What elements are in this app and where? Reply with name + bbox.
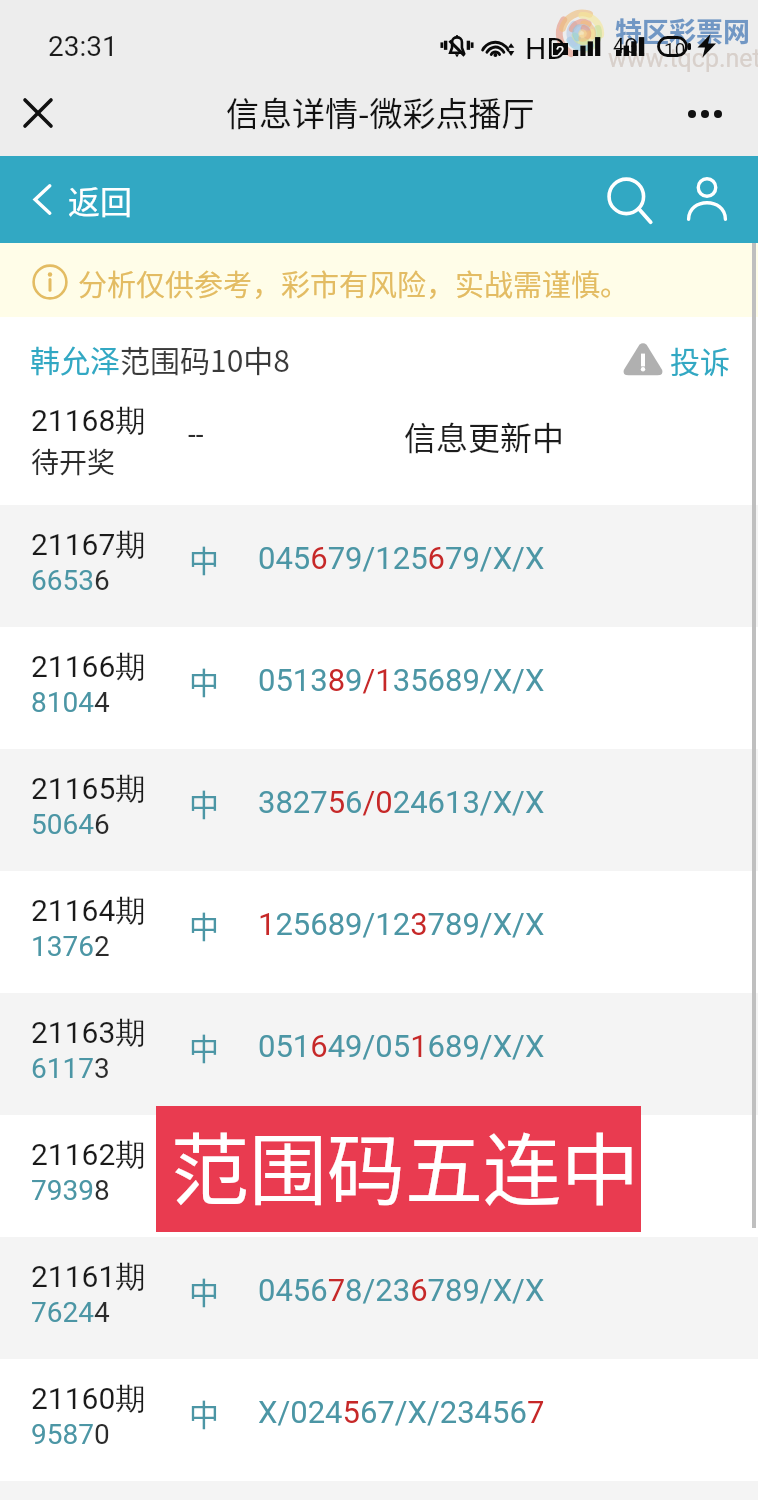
staticText: 76244 [31, 1296, 110, 1329]
staticText: 61173 [31, 1052, 110, 1085]
button[interactable]: 21164期 [0, 871, 758, 993]
button[interactable]: 21166期 [0, 627, 758, 749]
staticText: 95870 [31, 1418, 110, 1451]
staticText: 返回 [68, 177, 133, 223]
staticText: 045678/236789/X/X [258, 1272, 545, 1308]
button[interactable]: Search [601, 172, 659, 230]
button[interactable]: 21168期 [0, 396, 758, 505]
staticText: 4G [613, 34, 638, 57]
staticText: 21161期 [31, 1258, 146, 1296]
staticText: 81044 [31, 686, 110, 719]
staticText: 中 [189, 903, 219, 946]
staticText: 21167期 [31, 526, 146, 564]
staticText: 125689/123789/X/X [258, 906, 545, 942]
staticText: www.tqcp.net [608, 44, 758, 73]
button[interactable]: 21167期 [0, 505, 758, 627]
staticText: -- [188, 418, 204, 451]
staticText: 23:31 [48, 30, 118, 63]
staticText: 79398 [31, 1174, 110, 1207]
button[interactable]: 21165期 [0, 749, 758, 871]
staticText: 中 [189, 659, 219, 702]
staticText: 21163期 [31, 1014, 146, 1052]
staticText: 21162期 [31, 1136, 146, 1174]
staticText: 051649/051689/X/X [258, 1028, 545, 1064]
staticText: 21160期 [31, 1380, 146, 1418]
button[interactable]: 范围码五连中 [156, 1106, 641, 1232]
button[interactable]: 21161期 [0, 1237, 758, 1359]
staticText: 特区彩票网 [615, 11, 750, 50]
button[interactable]: 21160期 [0, 1359, 758, 1481]
button[interactable]: 投诉 [623, 334, 735, 384]
staticText: 中 [189, 1147, 219, 1190]
staticText: 韩允泽范围码10中8 [30, 337, 290, 380]
staticText: 10 [664, 38, 686, 60]
staticText: 21164期 [31, 892, 146, 930]
staticText: 045679/125679/X/X [258, 540, 545, 576]
staticText: 66536 [31, 564, 110, 597]
staticText: 信息更新中 [404, 413, 565, 459]
staticText: 50646 [31, 808, 110, 841]
button[interactable]: More options [677, 86, 733, 142]
staticText: 中 [189, 781, 219, 824]
staticText: 21166期 [31, 648, 146, 686]
staticText: 21168期 [31, 402, 146, 440]
staticText: 13762 [31, 930, 110, 963]
staticText: 待开奖 [31, 441, 116, 482]
staticText: 中 [189, 1269, 219, 1312]
button[interactable]: Profile [678, 170, 736, 228]
button[interactable]: 返回 [30, 156, 150, 243]
button[interactable]: 21163期 [0, 993, 758, 1115]
staticText: 051389/135689/X/X [258, 662, 545, 698]
staticText: 投诉 [670, 338, 730, 381]
button[interactable]: 21162期 [0, 1115, 758, 1237]
button[interactable]: Close [11, 86, 65, 140]
staticText: X/024567/X/234567 [258, 1394, 545, 1430]
staticText: 2 [556, 43, 565, 55]
staticText: HD [525, 31, 567, 66]
staticText: 中 [189, 1025, 219, 1068]
staticText: 分析仅供参考，彩市有风险，实战需谨慎。 [78, 262, 630, 304]
staticText: 范围码五连中 [171, 1109, 640, 1222]
staticText: 045678/236789/X/X [258, 1150, 545, 1186]
staticText: 中 [189, 537, 219, 580]
staticText: 382756/024613/X/X [258, 784, 545, 820]
staticText: 21165期 [31, 770, 146, 808]
staticText: 中 [189, 1391, 219, 1434]
staticText: 信息详情-微彩点播厅 [226, 88, 535, 136]
